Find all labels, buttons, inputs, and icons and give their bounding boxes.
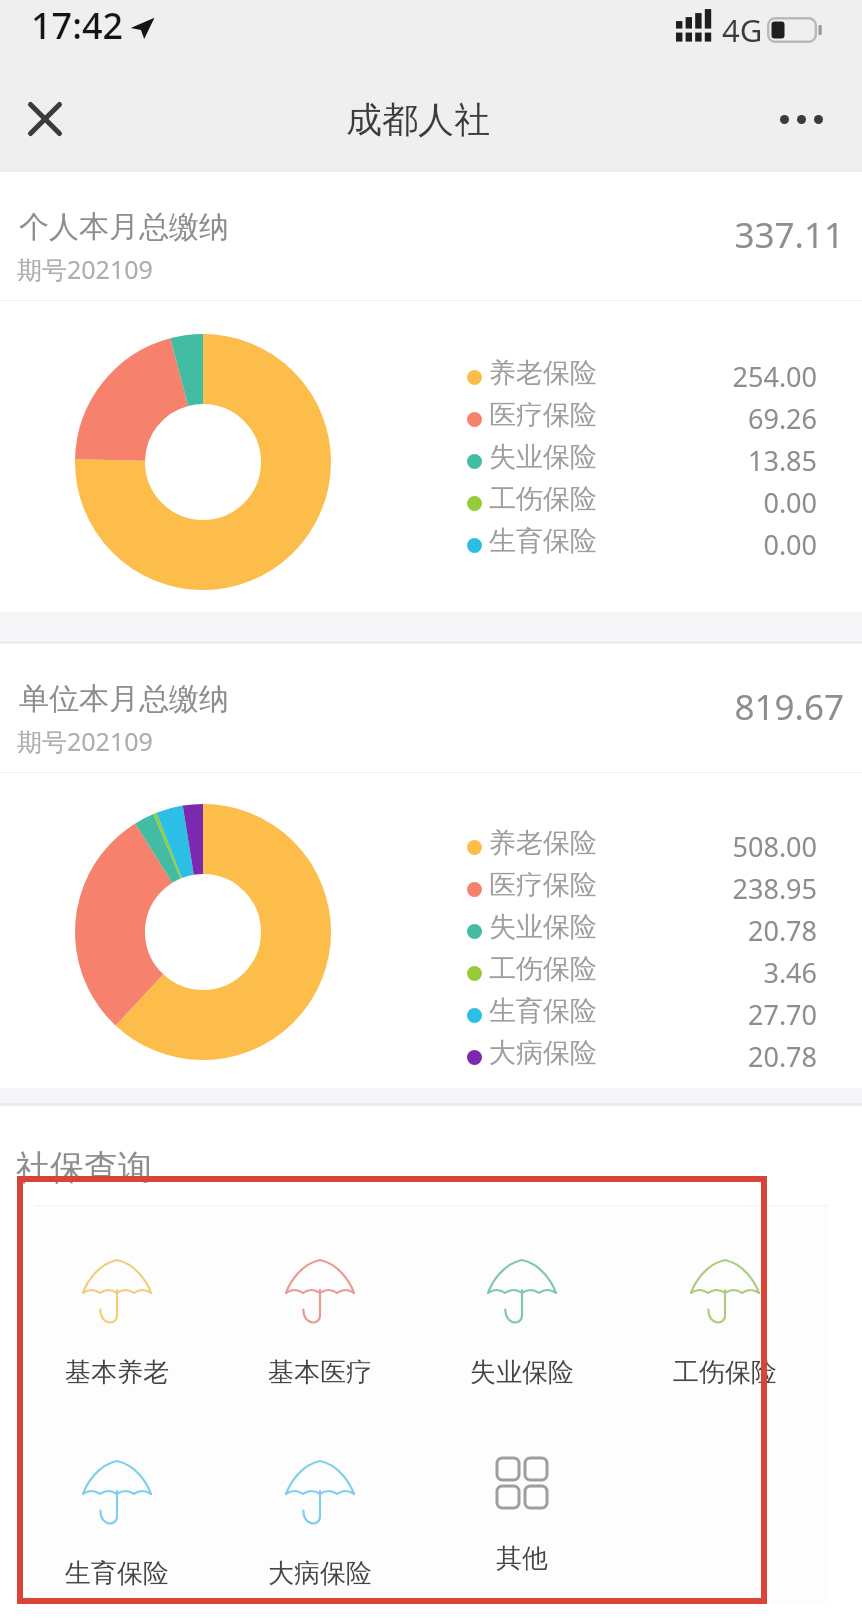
staticText: 13.85 [0, 442, 817, 479]
staticText: 失业保险 [489, 910, 597, 944]
button[interactable]: 大病保险 [224, 1442, 416, 1592]
staticText: 508.00 [0, 828, 817, 865]
staticText: 生育保险 [489, 994, 597, 1028]
staticText: 0.00 [0, 526, 817, 563]
staticText: 基本养老 [65, 1356, 169, 1389]
button[interactable]: 失业保险 [426, 1241, 618, 1391]
staticText: 大病保险 [489, 1036, 597, 1070]
staticText: 20.78 [0, 912, 817, 949]
staticText: 医疗保险 [489, 868, 597, 902]
staticText: 成都人社 [346, 97, 490, 142]
staticText: 失业保险 [489, 440, 597, 474]
staticText: 819.67 [0, 683, 844, 731]
button[interactable]: More options [770, 88, 832, 150]
button[interactable]: Close [14, 90, 72, 148]
button[interactable]: 其他 [426, 1440, 618, 1590]
staticText: 其他 [496, 1542, 548, 1575]
staticText: 期号202109 [17, 724, 153, 758]
button[interactable]: 基本医疗 [224, 1241, 416, 1391]
staticText: 20.78 [0, 1038, 817, 1075]
staticText: 单位本月总缴纳 [19, 680, 229, 718]
staticText: 生育保险 [489, 524, 597, 558]
button[interactable]: 基本养老 [21, 1241, 213, 1391]
staticText: 社保查询 [16, 1146, 152, 1189]
staticText: 生育保险 [65, 1557, 169, 1590]
staticText: 养老保险 [489, 826, 597, 860]
staticText: 工伤保险 [489, 952, 597, 986]
staticText: 337.11 [0, 211, 844, 259]
button[interactable]: 生育保险 [21, 1442, 213, 1592]
staticText: 大病保险 [268, 1557, 372, 1590]
staticText: 4G [722, 9, 763, 51]
staticText: 238.95 [0, 870, 817, 907]
staticText: 17:42 [31, 1, 124, 50]
staticText: 0.00 [0, 484, 817, 521]
button[interactable]: 工伤保险 [629, 1241, 821, 1391]
staticText: 医疗保险 [489, 398, 597, 432]
staticText: 27.70 [0, 996, 817, 1033]
staticText: 69.26 [0, 400, 817, 437]
staticText: 3.46 [0, 954, 817, 991]
staticText: 254.00 [0, 358, 817, 395]
staticText: 工伤保险 [673, 1356, 777, 1389]
staticText: 个人本月总缴纳 [19, 208, 229, 246]
staticText: 基本医疗 [268, 1356, 372, 1389]
staticText: 失业保险 [470, 1356, 574, 1389]
staticText: 工伤保险 [489, 482, 597, 516]
staticText: 养老保险 [489, 356, 597, 390]
staticText: 期号202109 [17, 252, 153, 286]
